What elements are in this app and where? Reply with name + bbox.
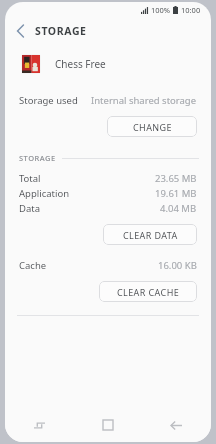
staticText: CLEAR CACHE (117, 286, 180, 298)
staticText: 16.00 KB (158, 259, 197, 272)
button[interactable]: Total (5, 171, 211, 186)
button[interactable]: Home (73, 408, 142, 442)
button[interactable]: Cache (5, 258, 211, 273)
staticText: Internal shared storage (91, 94, 197, 107)
button[interactable]: Storage used (5, 90, 211, 110)
button[interactable]: Chess Free (5, 48, 211, 80)
staticText: CLEAR DATA (123, 229, 178, 241)
staticText: 19.61 MB (155, 187, 197, 200)
button[interactable]: CLEAR CACHE (99, 281, 197, 302)
staticText: 4.04 MB (160, 202, 197, 215)
button[interactable]: Application (5, 186, 211, 201)
staticText: Data (19, 202, 41, 215)
button[interactable]: CLEAR DATA (103, 224, 197, 245)
staticText: STORAGE (35, 24, 87, 38)
staticText: Storage used (19, 94, 78, 107)
staticText: Total (19, 172, 41, 185)
staticText: Cache (19, 259, 47, 272)
button[interactable]: Recents (5, 408, 73, 442)
staticText: Application (19, 187, 70, 200)
staticText: 100% (151, 5, 171, 15)
button[interactable]: CHANGE (107, 116, 197, 137)
staticText: 23.65 MB (155, 172, 197, 185)
staticText: CHANGE (133, 121, 172, 133)
button[interactable]: Back (142, 408, 211, 442)
button[interactable]: Data (5, 201, 211, 216)
button[interactable]: Back (5, 18, 35, 44)
staticText: Chess Free (55, 57, 106, 71)
staticText: STORAGE (19, 153, 56, 163)
staticText: 10:00 (181, 5, 201, 15)
